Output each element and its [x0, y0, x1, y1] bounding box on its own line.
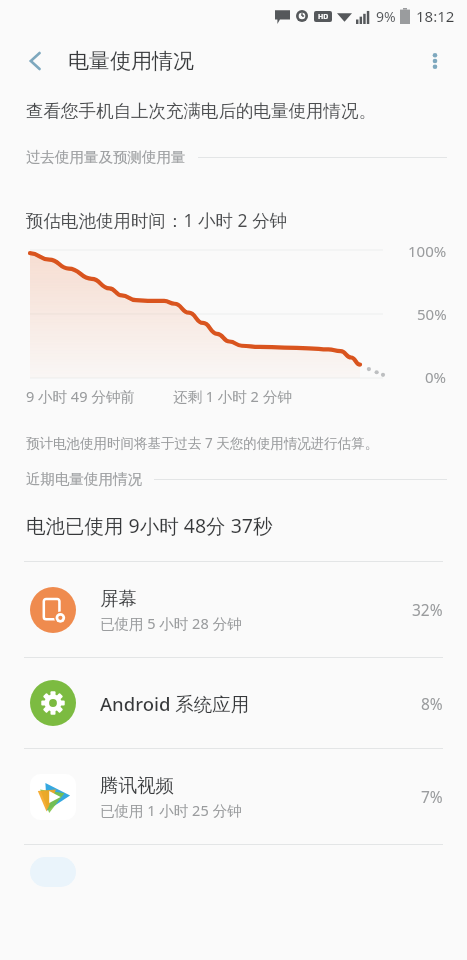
staticText: Android 系统应用	[100, 691, 250, 716]
staticText: 18:12	[416, 6, 455, 26]
staticText: 过去使用量及预测使用量	[26, 148, 186, 166]
staticText: 7%	[421, 786, 443, 807]
button[interactable]: 腾讯视频	[0, 749, 467, 844]
staticText: 查看您手机自上次充满电后的电量使用情况。	[26, 100, 376, 122]
staticText: 预估电池使用时间：1 小时 2 分钟	[26, 208, 288, 232]
staticText: 32%	[412, 599, 443, 620]
button[interactable]: More options	[411, 37, 459, 85]
staticText: 已使用 5 小时 28 分钟	[100, 613, 242, 633]
staticText: 腾讯视频	[100, 774, 174, 797]
staticText: 预计电池使用时间将基于过去 7 天您的使用情况进行估算。	[26, 434, 379, 452]
staticText: 9%	[376, 7, 396, 26]
staticText: 0%	[425, 367, 447, 387]
button[interactable]: Android 系统应用	[0, 658, 467, 748]
button[interactable]: Back	[12, 37, 60, 85]
staticText: 电量使用情况	[68, 48, 194, 74]
staticText: 50%	[417, 304, 447, 324]
staticText: 还剩 1 小时 2 分钟	[173, 386, 292, 406]
staticText: 100%	[408, 241, 447, 261]
staticText: 9 小时 49 分钟前	[26, 386, 135, 406]
staticText: 已使用 1 小时 25 分钟	[100, 800, 242, 820]
staticText: HD	[318, 12, 329, 22]
staticText: 8%	[421, 693, 443, 714]
staticText: 近期电量使用情况	[26, 470, 142, 488]
staticText: 电池已使用 9小时 48分 37秒	[26, 512, 273, 539]
button[interactable]: 屏幕	[0, 562, 467, 657]
staticText: 屏幕	[100, 587, 137, 610]
